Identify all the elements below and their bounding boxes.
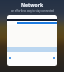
staticText: Network	[21, 2, 43, 9]
staticText: an effortless way to stay connected	[11, 9, 54, 13]
